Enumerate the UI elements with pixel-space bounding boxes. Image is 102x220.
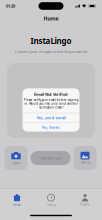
button[interactable]: Home	[0, 189, 34, 211]
staticText: Profile	[80, 203, 90, 206]
staticText: Gallery	[80, 161, 89, 164]
staticText: Please verify your email before signing …	[23, 98, 78, 109]
staticText: History	[46, 203, 55, 206]
button[interactable]: History	[34, 189, 68, 211]
staticText: Home	[13, 203, 21, 206]
staticText: No, thanks	[42, 124, 60, 130]
button[interactable]: Gallery	[73, 146, 96, 170]
button[interactable]: Yes, send email	[22, 113, 79, 122]
staticText: 01:20	[6, 3, 15, 9]
button[interactable]: Profile	[68, 189, 102, 211]
staticText: InstaLingo	[30, 36, 71, 46]
button[interactable]: Extract Text	[30, 151, 70, 165]
staticText: Extract Text	[40, 155, 60, 161]
staticText: Yes, send email	[36, 115, 65, 120]
staticText: Home	[43, 15, 58, 22]
staticText: Email Not Verified	[34, 91, 68, 97]
button[interactable]: Camera	[4, 146, 27, 170]
staticText: Convert your images to learning material	[15, 49, 87, 54]
staticText: Camera	[11, 161, 20, 165]
button[interactable]: No, thanks	[22, 123, 79, 132]
